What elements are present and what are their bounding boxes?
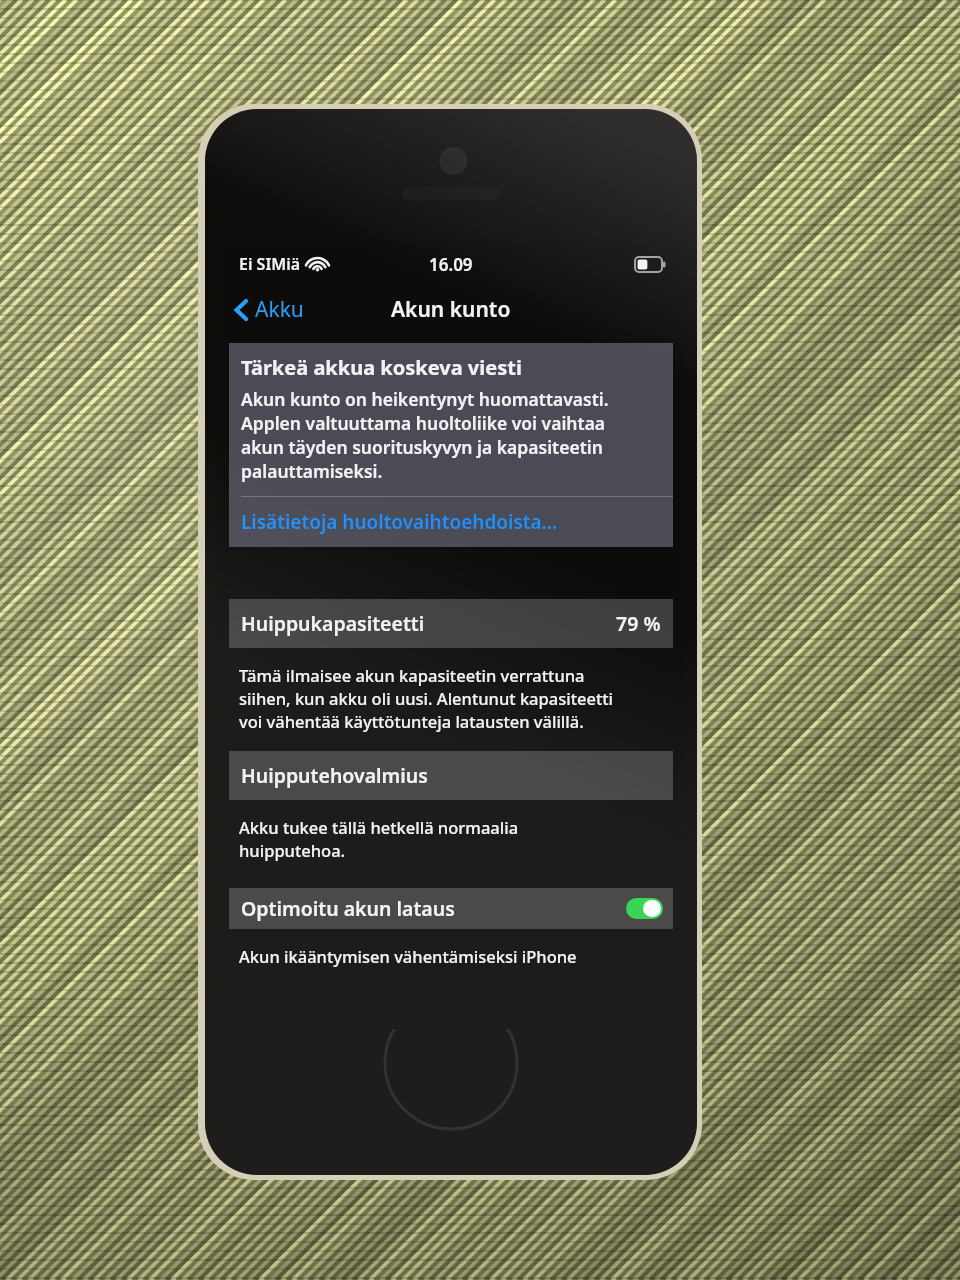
button[interactable]: Lisätietoja huoltovaihtoehdoista... — [229, 497, 673, 547]
staticText: Akku — [255, 295, 304, 324]
staticText: Akku tukee tällä hetkellä normaalia huip… — [239, 816, 663, 862]
staticText: Optimoitu akun lataus — [241, 895, 455, 922]
button[interactable]: Optimoitu akun lataus — [229, 888, 673, 929]
button[interactable]: Huippukapasiteetti — [229, 599, 673, 648]
staticText: 16.09 — [429, 253, 473, 276]
staticText: Tärkeä akkua koskeva viesti — [241, 354, 522, 381]
staticText: Huippukapasiteetti — [241, 610, 425, 637]
staticText: Lisätietoja huoltovaihtoehdoista... — [241, 509, 558, 535]
staticText: Akun kunto on heikentynyt huomattavasti.… — [241, 387, 609, 483]
button[interactable]: Huipputehovalmius — [229, 751, 673, 800]
staticText: Ei SIMiä — [239, 253, 301, 275]
staticText: 79 % — [616, 610, 661, 637]
button[interactable]: Akku — [229, 291, 310, 328]
staticText: Huipputehovalmius — [241, 762, 428, 789]
staticText: Tämä ilmaisee akun kapasiteetin verrattu… — [239, 664, 663, 733]
staticText: Akun ikääntymisen vähentämiseksi iPhone — [239, 945, 663, 967]
staticText: Akun kunto — [391, 295, 511, 324]
button[interactable]: Tärkeä akkua koskeva viesti — [229, 343, 673, 496]
button[interactable]: Optimoitu akun lataus toggle — [626, 898, 663, 919]
